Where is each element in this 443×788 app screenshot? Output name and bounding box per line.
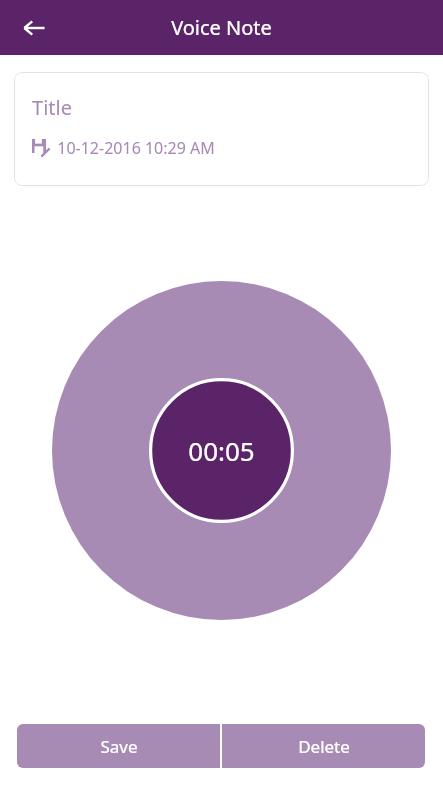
button[interactable]: Title xyxy=(14,72,429,186)
staticText: Title xyxy=(32,94,72,121)
button[interactable]: Delete xyxy=(222,724,425,768)
staticText: Delete xyxy=(298,735,350,758)
button[interactable]: Save xyxy=(17,724,220,768)
staticText: 00:05 xyxy=(188,433,255,468)
staticText: 10-12-2016 10:29 AM xyxy=(57,137,215,159)
staticText: Save xyxy=(100,735,138,758)
staticText: Voice Note xyxy=(171,14,272,41)
button[interactable]: Record xyxy=(52,281,391,620)
button[interactable]: Back xyxy=(14,8,54,48)
